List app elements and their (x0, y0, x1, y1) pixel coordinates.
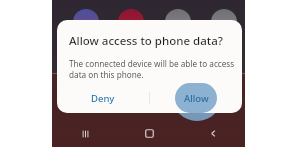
button[interactable]: Recents (52, 120, 117, 147)
staticText: The connected device will be able to acc… (69, 58, 235, 81)
staticText: Deny (91, 92, 115, 105)
staticText: Allow access to phone data? (69, 33, 223, 49)
button[interactable]: Back (181, 120, 245, 147)
button[interactable]: Allow (150, 83, 242, 113)
button[interactable]: Home (117, 120, 181, 147)
button[interactable]: Deny (57, 83, 149, 113)
staticText: Allow (184, 92, 209, 105)
